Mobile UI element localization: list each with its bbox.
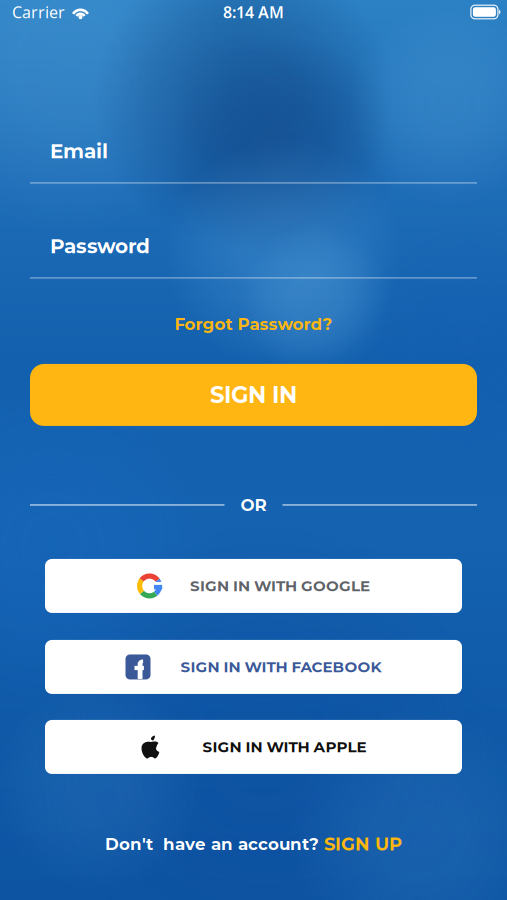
staticText: OR	[240, 495, 266, 515]
staticText: SIGN IN WITH APPLE	[202, 738, 366, 756]
button[interactable]: SIGN UP	[324, 833, 402, 855]
button[interactable]: SIGN IN	[30, 364, 477, 426]
staticText: Carrier	[12, 1, 65, 23]
staticText: Email	[50, 139, 108, 163]
button[interactable]: SIGN IN WITH GOOGLE	[30, 559, 477, 613]
staticText: Password	[50, 234, 150, 258]
button[interactable]: Forgot Password?	[174, 315, 332, 333]
staticText: Forgot Password?	[174, 314, 332, 334]
staticText: SIGN UP	[324, 833, 402, 855]
button[interactable]: SIGN IN WITH FACEBOOK	[30, 640, 477, 694]
staticText: SIGN IN WITH FACEBOOK	[180, 658, 381, 676]
staticText: 8:14 AM	[223, 1, 284, 23]
button[interactable]: SIGN IN WITH APPLE	[30, 720, 477, 774]
staticText: SIGN IN	[210, 381, 297, 409]
staticText: SIGN IN WITH GOOGLE	[190, 577, 370, 595]
staticText: Don't have an account?	[105, 834, 324, 854]
